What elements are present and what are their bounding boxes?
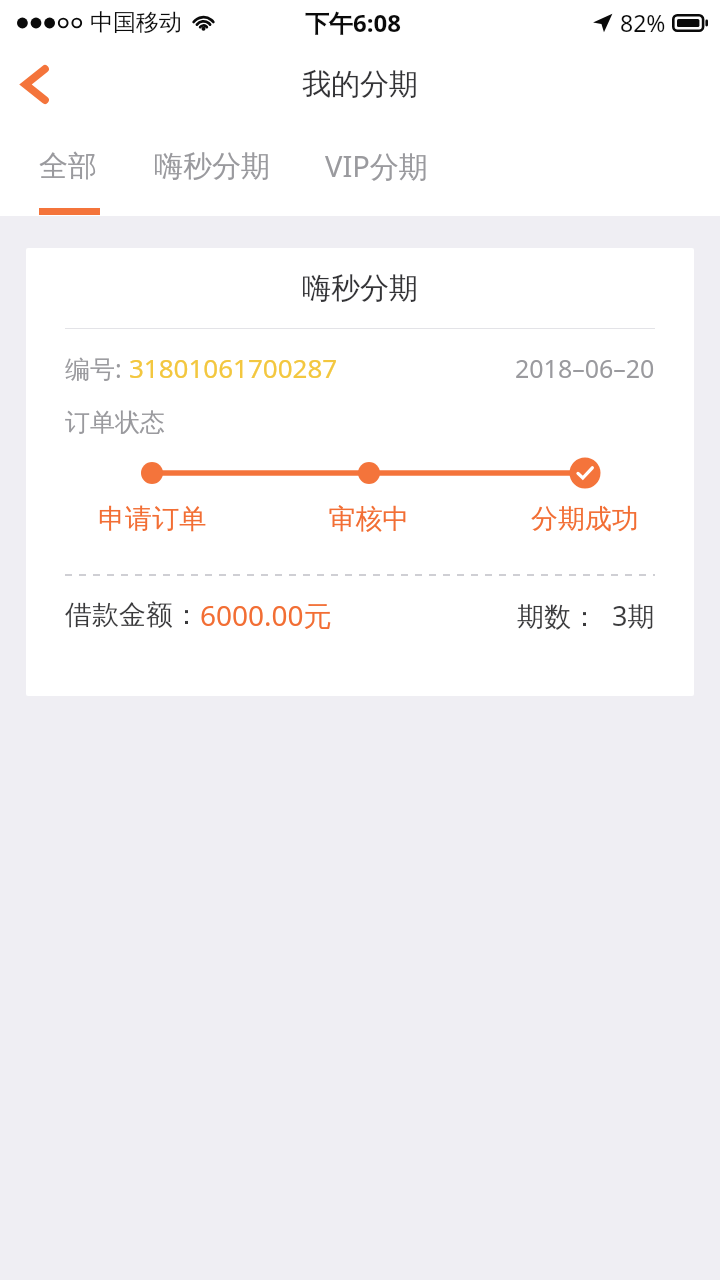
staticText: VIP分期 [325, 146, 428, 186]
staticText: 2018–06–20 [515, 351, 655, 385]
button[interactable]: Back [0, 49, 70, 119]
button[interactable]: VIP分期 [325, 124, 428, 208]
staticText: 全部 [39, 148, 97, 185]
staticText: 编号: [65, 351, 129, 385]
staticText: 期数： 3期 [517, 597, 655, 634]
staticText: 申请订单 [72, 502, 232, 536]
staticText: 6000.00元 [200, 596, 332, 634]
staticText: 审核中 [289, 502, 449, 536]
staticText: 订单状态 [65, 407, 165, 438]
staticText: 嗨秒分期 [154, 148, 270, 185]
button[interactable]: 嗨秒分期 [154, 124, 270, 208]
button[interactable]: 全部 [39, 124, 97, 208]
staticText: 借款金额： [65, 598, 200, 632]
staticText: 中国移动 [90, 8, 182, 37]
staticText: 31801061700287 [129, 350, 338, 385]
staticText: 我的分期 [302, 66, 418, 103]
button[interactable]: 嗨秒分期 [26, 248, 694, 696]
staticText: 嗨秒分期 [302, 270, 418, 307]
staticText: 下午6:08 [305, 6, 401, 39]
staticText: 分期成功 [505, 502, 665, 536]
staticText: 82% [620, 7, 666, 38]
